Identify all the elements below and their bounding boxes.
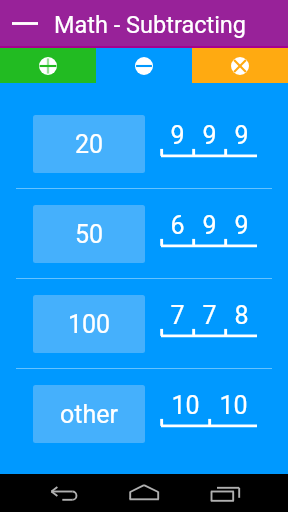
button[interactable]: Recents (192, 474, 288, 512)
staticText: 7 (202, 301, 217, 330)
button[interactable]: 20 (0, 99, 288, 188)
staticText: 9 (234, 211, 249, 240)
staticText: 9 (202, 121, 217, 150)
staticText: 7 (170, 301, 185, 330)
button[interactable]: 50 (0, 189, 288, 278)
staticText: 6 (170, 211, 185, 240)
button[interactable]: Addition (0, 48, 96, 83)
staticText: 9 (234, 121, 249, 150)
button[interactable]: other (0, 369, 288, 458)
button[interactable]: Subtraction (96, 48, 192, 83)
button[interactable]: Multiplication (192, 48, 288, 83)
staticText: 10 (171, 391, 200, 420)
button[interactable]: Menu (0, 0, 50, 48)
button[interactable]: 100 (0, 279, 288, 368)
button[interactable]: Back (0, 474, 96, 512)
staticText: 10 (219, 391, 248, 420)
staticText: other (60, 400, 118, 429)
staticText: 50 (75, 220, 104, 249)
button[interactable]: Home (96, 474, 192, 512)
staticText: 9 (170, 121, 185, 150)
staticText: 8 (234, 301, 249, 330)
staticText: 100 (68, 310, 111, 339)
staticText: 9 (202, 211, 217, 240)
staticText: Math - Subtracting (54, 11, 247, 39)
staticText: 20 (75, 130, 104, 159)
